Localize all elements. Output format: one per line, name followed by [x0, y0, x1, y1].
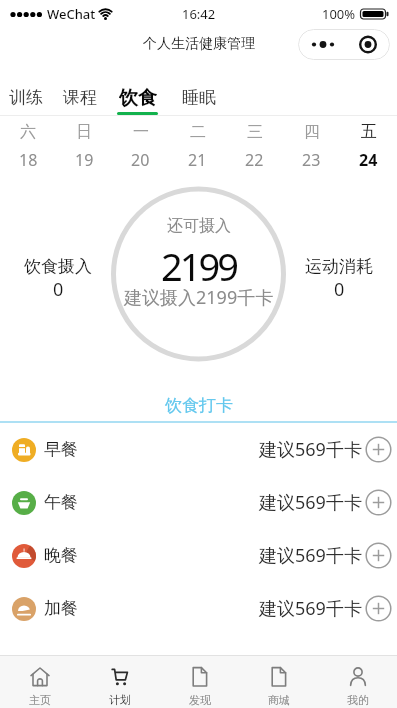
staticText: 0 — [334, 277, 345, 302]
button[interactable]: 二 — [169, 122, 226, 172]
button[interactable]: 一 — [112, 122, 169, 172]
staticText: 课程 — [63, 87, 97, 108]
button[interactable]: 饮食打卡 — [0, 390, 397, 421]
button[interactable]: 五 — [340, 122, 397, 172]
button[interactable]: 主页 — [0, 656, 80, 708]
button[interactable]: 三 — [226, 122, 283, 172]
button[interactable]: 四 — [283, 122, 340, 172]
staticText: 训练 — [9, 87, 43, 108]
staticText: 16:42 — [182, 5, 216, 23]
button[interactable]: 晚餐 — [0, 529, 397, 582]
staticText: 2199 — [161, 240, 236, 292]
button[interactable]: 午餐 — [0, 476, 397, 529]
staticText: 0 — [53, 277, 64, 302]
staticText: 三 — [247, 122, 263, 142]
staticText: 运动消耗 — [305, 256, 373, 277]
staticText: 四 — [304, 122, 320, 142]
button[interactable]: 训练 — [9, 86, 43, 115]
staticText: 早餐 — [44, 439, 78, 460]
staticText: 还可摄入 — [167, 216, 231, 236]
staticText: 加餐 — [44, 598, 78, 619]
button[interactable]: 我的 — [318, 656, 397, 708]
staticText: 18 — [19, 149, 38, 171]
staticText: 商城 — [268, 693, 290, 707]
staticText: 六 — [20, 122, 36, 142]
staticText: 晚餐 — [44, 545, 78, 566]
staticText: 建议摄入2199千卡 — [124, 285, 274, 310]
staticText: 一 — [133, 122, 149, 142]
staticText: 22 — [245, 149, 264, 171]
staticText: 24 — [359, 149, 378, 171]
button[interactable] — [298, 29, 390, 60]
staticText: 建议569千卡 — [259, 596, 362, 621]
staticText: 睡眠 — [182, 87, 216, 108]
staticText: 二 — [190, 122, 206, 142]
button[interactable] — [365, 436, 392, 463]
staticText: 20 — [131, 149, 150, 171]
staticText: 午餐 — [44, 492, 78, 513]
staticText: 建议569千卡 — [259, 490, 362, 515]
button[interactable]: 日 — [56, 122, 112, 172]
button[interactable]: 课程 — [63, 86, 97, 115]
staticText: 建议569千卡 — [259, 437, 362, 462]
button[interactable]: 商城 — [239, 656, 318, 708]
button[interactable]: 加餐 — [0, 582, 397, 635]
button[interactable]: 六 — [0, 122, 56, 172]
button[interactable]: 发现 — [160, 656, 239, 708]
staticText: 23 — [302, 149, 321, 171]
staticText: 饮食 — [119, 86, 157, 109]
button[interactable] — [365, 489, 392, 516]
staticText: 19 — [75, 149, 94, 171]
staticText: 计划 — [109, 693, 131, 707]
staticText: 五 — [361, 122, 377, 142]
button[interactable]: 计划 — [80, 656, 160, 708]
staticText: 个人生活健康管理 — [143, 35, 255, 53]
staticText: 我的 — [347, 693, 369, 707]
staticText: 主页 — [29, 693, 51, 707]
staticText: 日 — [76, 122, 92, 142]
button[interactable] — [365, 542, 392, 569]
staticText: 21 — [188, 149, 207, 171]
button[interactable]: 饮食 — [117, 86, 158, 115]
staticText: 饮食打卡 — [165, 395, 233, 416]
staticText: 建议569千卡 — [259, 543, 362, 568]
staticText: 发现 — [189, 693, 211, 707]
staticText: 饮食摄入 — [24, 256, 92, 277]
button[interactable]: 早餐 — [0, 423, 397, 476]
button[interactable]: 睡眠 — [182, 86, 216, 115]
button[interactable] — [365, 595, 392, 622]
staticText: 100% — [322, 5, 356, 23]
staticText: WeChat — [47, 5, 96, 23]
